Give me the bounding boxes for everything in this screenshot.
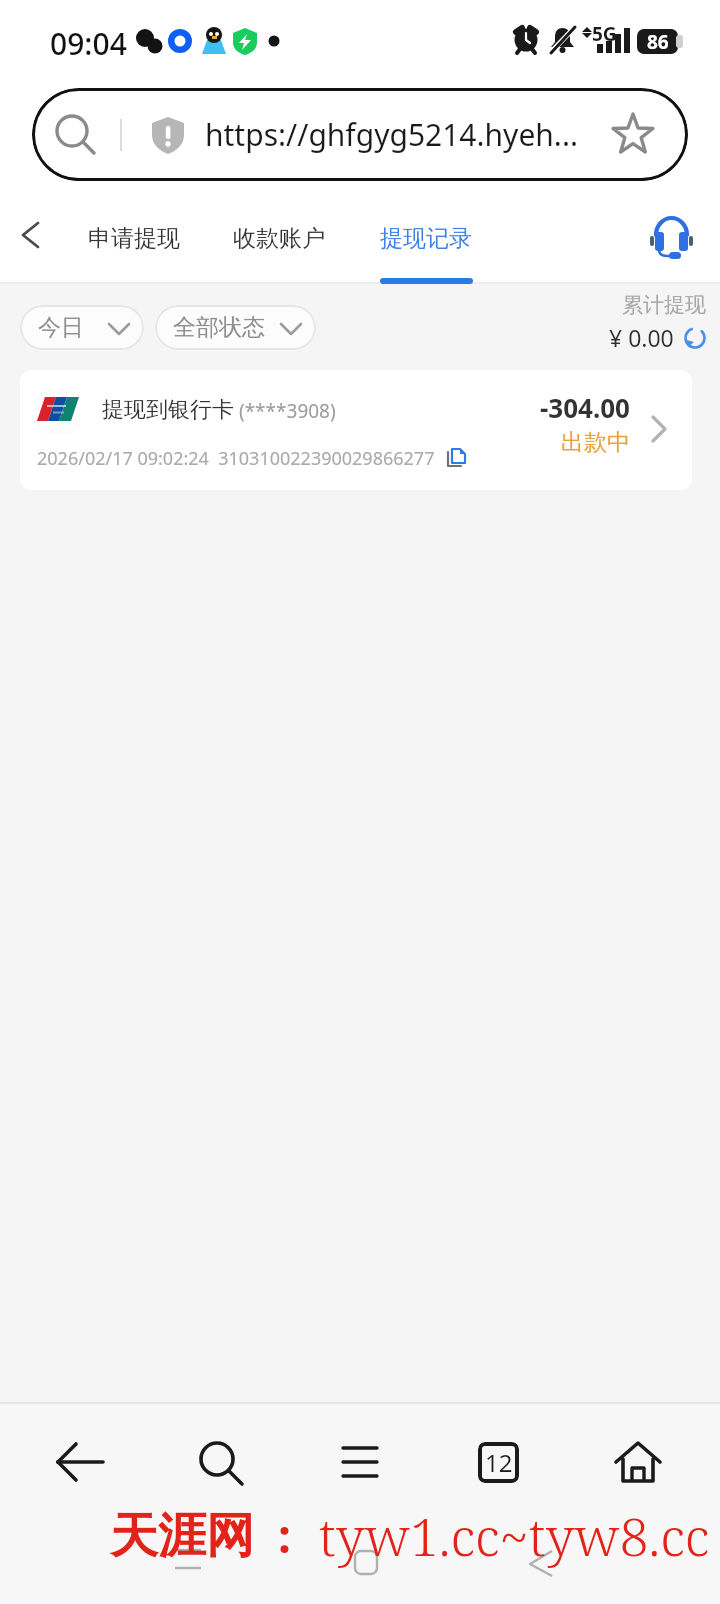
staticText: (****3908) — [234, 398, 336, 424]
other: Search — [54, 114, 96, 156]
button[interactable]: Refresh — [684, 327, 706, 349]
staticText: 86 — [647, 29, 669, 54]
staticText: 申请提现 — [88, 224, 180, 253]
button[interactable]: 今日 — [20, 305, 144, 350]
staticText: 全部状态 — [173, 313, 265, 342]
staticText: 12 — [485, 1446, 513, 1479]
button[interactable]: Home — [614, 1440, 664, 1486]
staticText: 5G — [592, 21, 617, 47]
staticText: ¥ 0.00 — [609, 322, 674, 353]
staticText: 2026/02/17 09:02:24 31031002239002986627… — [37, 446, 435, 471]
button[interactable]: Bookmark — [610, 112, 656, 158]
button[interactable]: 收款账户 — [233, 224, 325, 253]
button[interactable]: Customer service — [650, 218, 694, 258]
button[interactable]: Search — [198, 1440, 246, 1486]
button[interactable]: Menu — [342, 1444, 380, 1484]
button[interactable]: 全部状态 — [155, 305, 316, 350]
staticText: -304.00 — [540, 390, 630, 425]
staticText: tyw1.cc~tyw8.cc — [319, 1500, 710, 1571]
staticText: : — [278, 1504, 291, 1567]
staticText: https://ghfgyg5214.hyeh... — [205, 114, 578, 155]
button[interactable]: 提现到银行卡 — [20, 370, 692, 490]
button[interactable]: Back — [56, 1440, 106, 1484]
staticText: 累计提现 — [622, 292, 706, 318]
staticText: 今日 — [38, 313, 84, 342]
staticText: 09:04 — [50, 23, 127, 64]
staticText: 出款中 — [561, 428, 630, 457]
button[interactable]: Copy — [447, 448, 469, 470]
button[interactable]: Search — [32, 88, 688, 181]
staticText: 提现记录 — [380, 224, 472, 253]
staticText: 天涯网 — [110, 1506, 254, 1566]
button[interactable]: 提现记录 — [380, 224, 472, 253]
staticText: 收款账户 — [233, 224, 325, 253]
staticText: 提现到银行卡 — [102, 396, 234, 424]
button[interactable]: Tabs — [478, 1442, 519, 1483]
button[interactable]: Back — [8, 214, 60, 266]
button[interactable]: 申请提现 — [88, 224, 180, 253]
